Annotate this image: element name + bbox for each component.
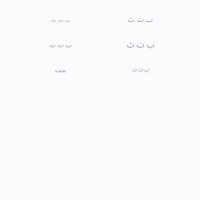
staticText: ب ت ث [131,64,148,76]
staticText: ب ت ث [49,41,71,49]
staticText: ب ت ث [50,17,69,23]
staticText: بتث [54,66,65,74]
staticText: ب ت ث [127,13,152,27]
staticText: ب ت ث [126,37,154,53]
